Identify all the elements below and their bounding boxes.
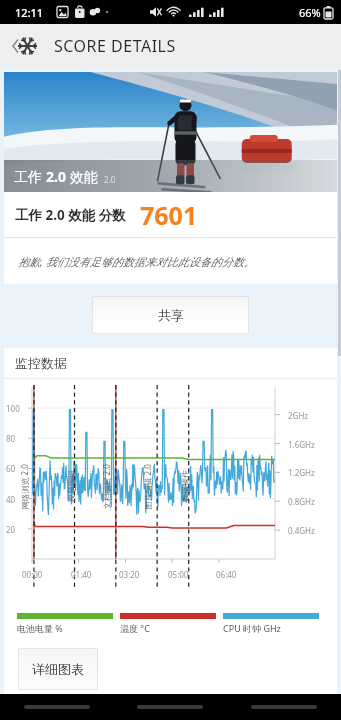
staticText: 共享 (158, 307, 184, 323)
staticText: 12:11 (15, 5, 44, 20)
staticText: SCORE DETAILS (54, 35, 176, 57)
staticText: 80 (6, 433, 16, 444)
staticText: 1.6GHz (288, 439, 315, 450)
button[interactable]: Back (4, 26, 44, 66)
staticText: 详细图表 (32, 661, 84, 677)
staticText: 40 (6, 494, 16, 505)
staticText: 03:20 (119, 569, 140, 580)
staticText: 图片编辑 2.0 (141, 463, 152, 509)
staticText: 抱歉, 我们没有足够的数据来对比此设备的分数。 (18, 254, 255, 269)
staticText: 2GHz (288, 410, 309, 421)
staticText: 7601 (140, 198, 198, 232)
staticText: 视频编辑 (66, 470, 76, 502)
staticText: 网络浏览 2.0 (18, 463, 29, 509)
staticText: 文档编写 2.0 (100, 463, 111, 509)
button[interactable]: Recents (0, 694, 113, 720)
staticText: 1.2GHz (288, 467, 315, 478)
button[interactable]: 抱歉, 我们没有足够的数据来对比此设备的分数。 (4, 238, 337, 284)
staticText: CPU 时钟 GHz (223, 622, 281, 634)
staticText: 工作 2.0 效能 分数 (15, 206, 126, 224)
staticText: 60 (6, 463, 16, 474)
staticText: 监控数据 (15, 355, 67, 371)
staticText: 01:40 (71, 569, 92, 580)
button[interactable]: CPU 时钟 GHz (223, 613, 319, 634)
button[interactable]: Home (113, 694, 227, 720)
staticText: 100 (6, 403, 20, 414)
button[interactable]: Back (227, 694, 341, 720)
staticText: 66% (299, 5, 321, 20)
staticText: 数据操作 (180, 470, 190, 502)
button[interactable]: 电池电量 % (17, 613, 113, 634)
staticText: 温度 °C (120, 622, 150, 634)
staticText: 05:00 (168, 569, 189, 580)
staticText: 工作 (14, 167, 46, 186)
staticText: 0.8GHz (288, 496, 315, 507)
staticText: 电池电量 % (17, 622, 63, 634)
staticText: 2.0 (46, 167, 66, 186)
staticText: 0.4GHz (288, 525, 315, 536)
staticText: 2.0 (104, 174, 116, 185)
staticText: 06:40 (216, 569, 237, 580)
button[interactable]: 温度 °C (120, 613, 216, 634)
button[interactable]: 详细图表 (18, 648, 98, 690)
button[interactable]: 工作 2.0 效能 分数 (4, 192, 337, 237)
staticText: 效能 (66, 167, 98, 186)
button[interactable]: 工作 (4, 72, 337, 192)
staticText: 00:00 (22, 569, 43, 580)
button[interactable]: 共享 (92, 296, 249, 334)
staticText: 20 (6, 524, 16, 535)
